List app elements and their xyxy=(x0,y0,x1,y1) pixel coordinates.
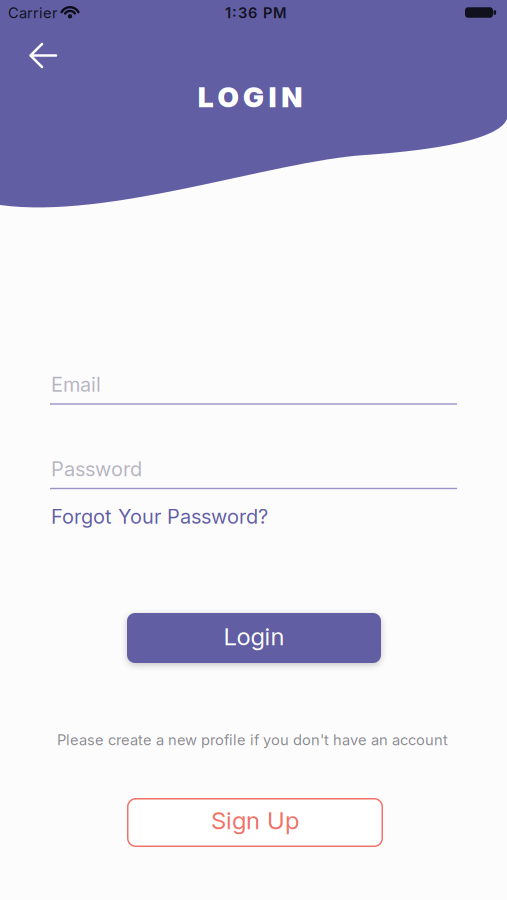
staticText: LOGIN xyxy=(198,80,302,113)
staticText: Please create a new profile if you don't… xyxy=(57,731,448,749)
staticText: Password xyxy=(51,457,142,481)
staticText: Login xyxy=(223,622,284,651)
staticText: Email xyxy=(51,373,101,396)
staticText: Forgot Your Password? xyxy=(51,505,268,528)
staticText: 1:36 PM xyxy=(225,4,287,22)
staticText: Sign Up xyxy=(211,806,299,835)
staticText: Carrier xyxy=(8,4,58,22)
